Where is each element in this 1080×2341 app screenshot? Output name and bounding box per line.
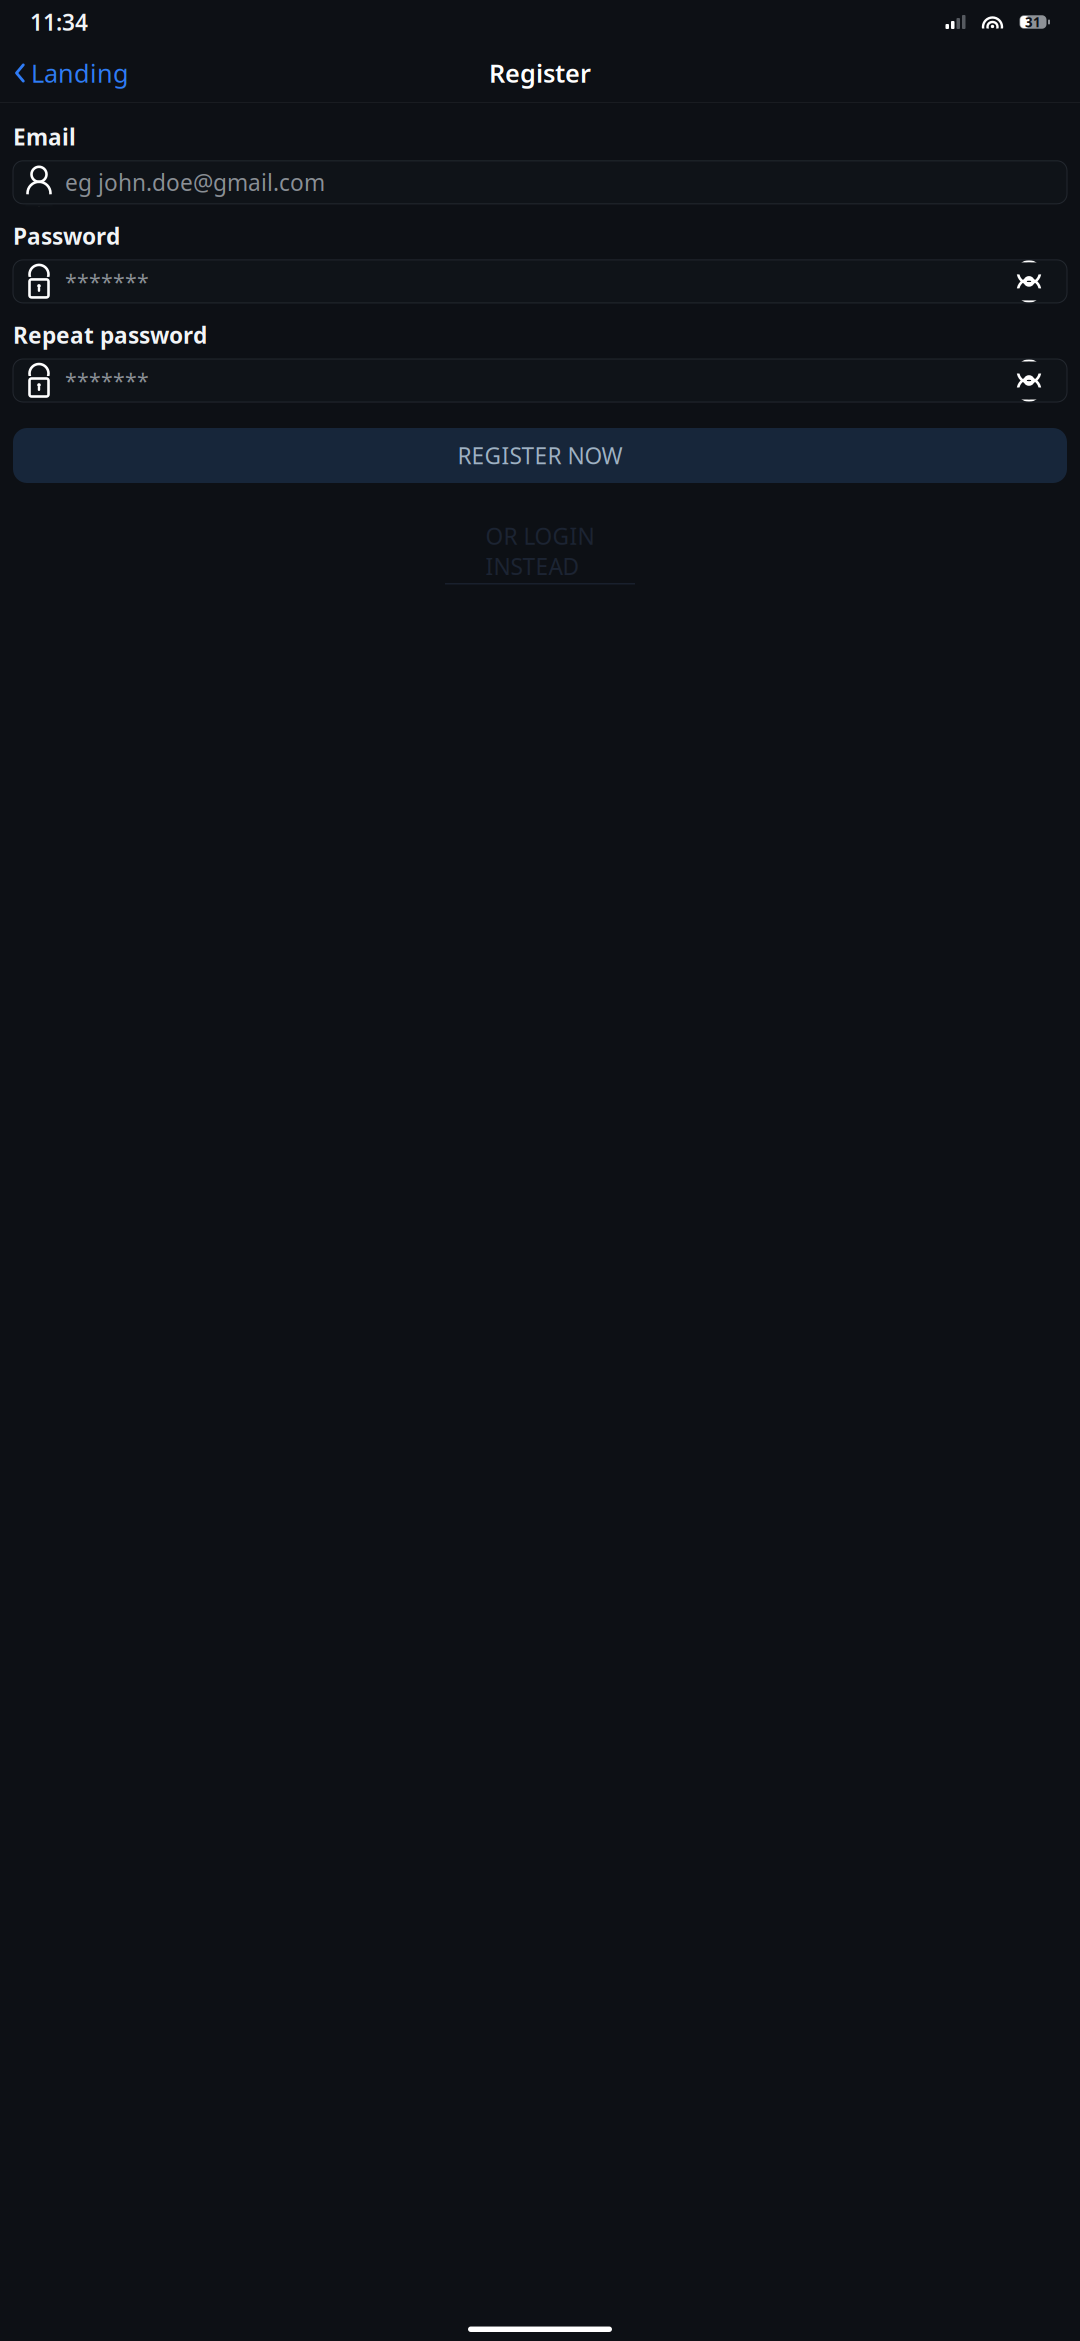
staticText: 11:34 xyxy=(30,7,88,37)
button[interactable]: REGISTER NOW xyxy=(13,428,1067,483)
staticText: OR LOGIN INSTEAD xyxy=(485,521,594,581)
button[interactable]: OR LOGIN INSTEAD xyxy=(445,515,635,590)
staticText: Email xyxy=(13,122,76,152)
button[interactable]: Show repeated password xyxy=(1009,363,1049,397)
staticText: ******* xyxy=(65,267,149,295)
button[interactable]: Landing xyxy=(6,48,137,98)
staticText: REGISTER NOW xyxy=(457,440,622,471)
staticText: Landing xyxy=(31,56,129,90)
button[interactable]: eg john.doe@gmail.com xyxy=(13,161,1067,204)
staticText: 31 xyxy=(1025,13,1041,31)
staticText: ******* xyxy=(65,366,149,395)
button[interactable]: Show password xyxy=(1009,264,1049,298)
staticText: eg john.doe@gmail.com xyxy=(65,167,325,197)
staticText: Register xyxy=(489,56,591,90)
staticText: Password xyxy=(13,221,120,251)
staticText: Repeat password xyxy=(13,320,207,350)
